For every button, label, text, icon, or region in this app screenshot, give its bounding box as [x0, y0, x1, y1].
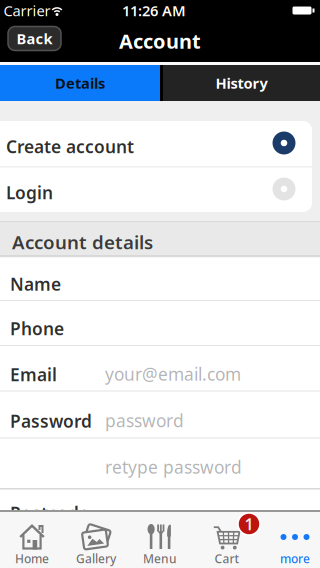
staticText: Cart [214, 550, 239, 566]
staticText: Carrier [3, 1, 50, 20]
button[interactable]: Password [0, 391, 320, 437]
button[interactable]: Details [0, 65, 160, 101]
staticText: password [105, 409, 184, 432]
button[interactable]: Cart [192, 510, 256, 568]
staticText: your@email.com [105, 362, 241, 385]
staticText: Account [119, 28, 201, 54]
button[interactable]: Email [0, 346, 320, 390]
staticText: Account details [12, 229, 153, 254]
staticText: 11:26 AM [122, 1, 186, 20]
staticText: Password [10, 409, 92, 432]
staticText: more [280, 550, 310, 566]
staticText: Phone [10, 317, 64, 340]
staticText: Gallery [76, 550, 116, 566]
button[interactable]: History [163, 65, 320, 101]
button[interactable]: Menu [128, 510, 192, 568]
staticText: retype password [105, 455, 242, 478]
staticText: 1 [244, 513, 253, 535]
button[interactable]: Login [0, 167, 312, 212]
button[interactable]: Name [0, 257, 320, 300]
staticText: Login [6, 181, 53, 204]
staticText: Create account [6, 135, 134, 158]
button[interactable]: Back [8, 26, 61, 50]
button[interactable]: Postcode [0, 489, 320, 532]
button[interactable]: retype password [0, 438, 320, 488]
button[interactable]: more [263, 510, 320, 568]
staticText: Postcode [10, 501, 89, 524]
button[interactable]: Create account [0, 121, 312, 166]
staticText: Home [15, 550, 49, 566]
staticText: History [215, 73, 267, 93]
button[interactable]: Home [0, 510, 64, 568]
button[interactable]: Gallery [64, 510, 128, 568]
staticText: Details [55, 73, 105, 93]
staticText: Email [10, 363, 57, 386]
staticText: Back [16, 29, 52, 48]
button[interactable]: Phone [0, 301, 320, 345]
staticText: Menu [143, 550, 177, 566]
staticText: Name [10, 272, 61, 295]
